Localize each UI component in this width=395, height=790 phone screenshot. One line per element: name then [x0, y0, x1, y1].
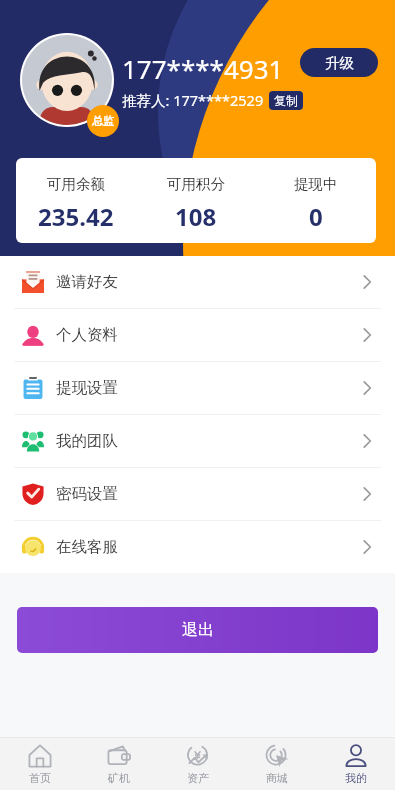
- staticText: 矿机: [108, 771, 130, 785]
- staticText: 邀请好友: [56, 272, 118, 292]
- staticText: 总监: [92, 114, 114, 128]
- staticText: 可用积分: [167, 175, 225, 193]
- staticText: 177****4931: [122, 51, 284, 86]
- staticText: 提现设置: [56, 378, 118, 398]
- staticText: 提现中: [294, 175, 338, 193]
- button[interactable]: 升级: [300, 48, 378, 77]
- staticText: 0: [309, 200, 323, 233]
- button[interactable]: 提现设置: [0, 362, 395, 414]
- button[interactable]: 邀请好友: [0, 256, 395, 308]
- staticText: 可用余额: [47, 175, 105, 193]
- button[interactable]: 矿机: [79, 738, 158, 785]
- staticText: 推荐人: 177****2529: [122, 90, 264, 110]
- staticText: 我的团队: [56, 431, 118, 451]
- button[interactable]: 资产: [158, 738, 237, 785]
- staticText: 退出: [182, 620, 214, 640]
- button[interactable]: 在线客服: [0, 521, 395, 573]
- button[interactable]: 我的团队: [0, 415, 395, 467]
- button[interactable]: 商城: [237, 738, 316, 785]
- staticText: 复制: [274, 93, 298, 108]
- button[interactable]: 密码设置: [0, 468, 395, 520]
- staticText: 我的: [345, 771, 367, 785]
- staticText: 商城: [266, 771, 288, 785]
- button[interactable]: 退出: [17, 607, 378, 653]
- staticText: 资产: [187, 771, 209, 785]
- staticText: 235.42: [38, 200, 114, 233]
- staticText: 在线客服: [56, 537, 118, 557]
- staticText: 密码设置: [56, 484, 118, 504]
- staticText: 首页: [29, 771, 51, 785]
- button[interactable]: 复制: [269, 91, 303, 110]
- staticText: 升级: [325, 54, 354, 72]
- button[interactable]: 个人资料: [0, 309, 395, 361]
- staticText: 108: [175, 200, 217, 233]
- staticText: 个人资料: [56, 325, 118, 345]
- button[interactable]: 首页: [0, 738, 79, 785]
- button[interactable]: 我的: [316, 738, 395, 785]
